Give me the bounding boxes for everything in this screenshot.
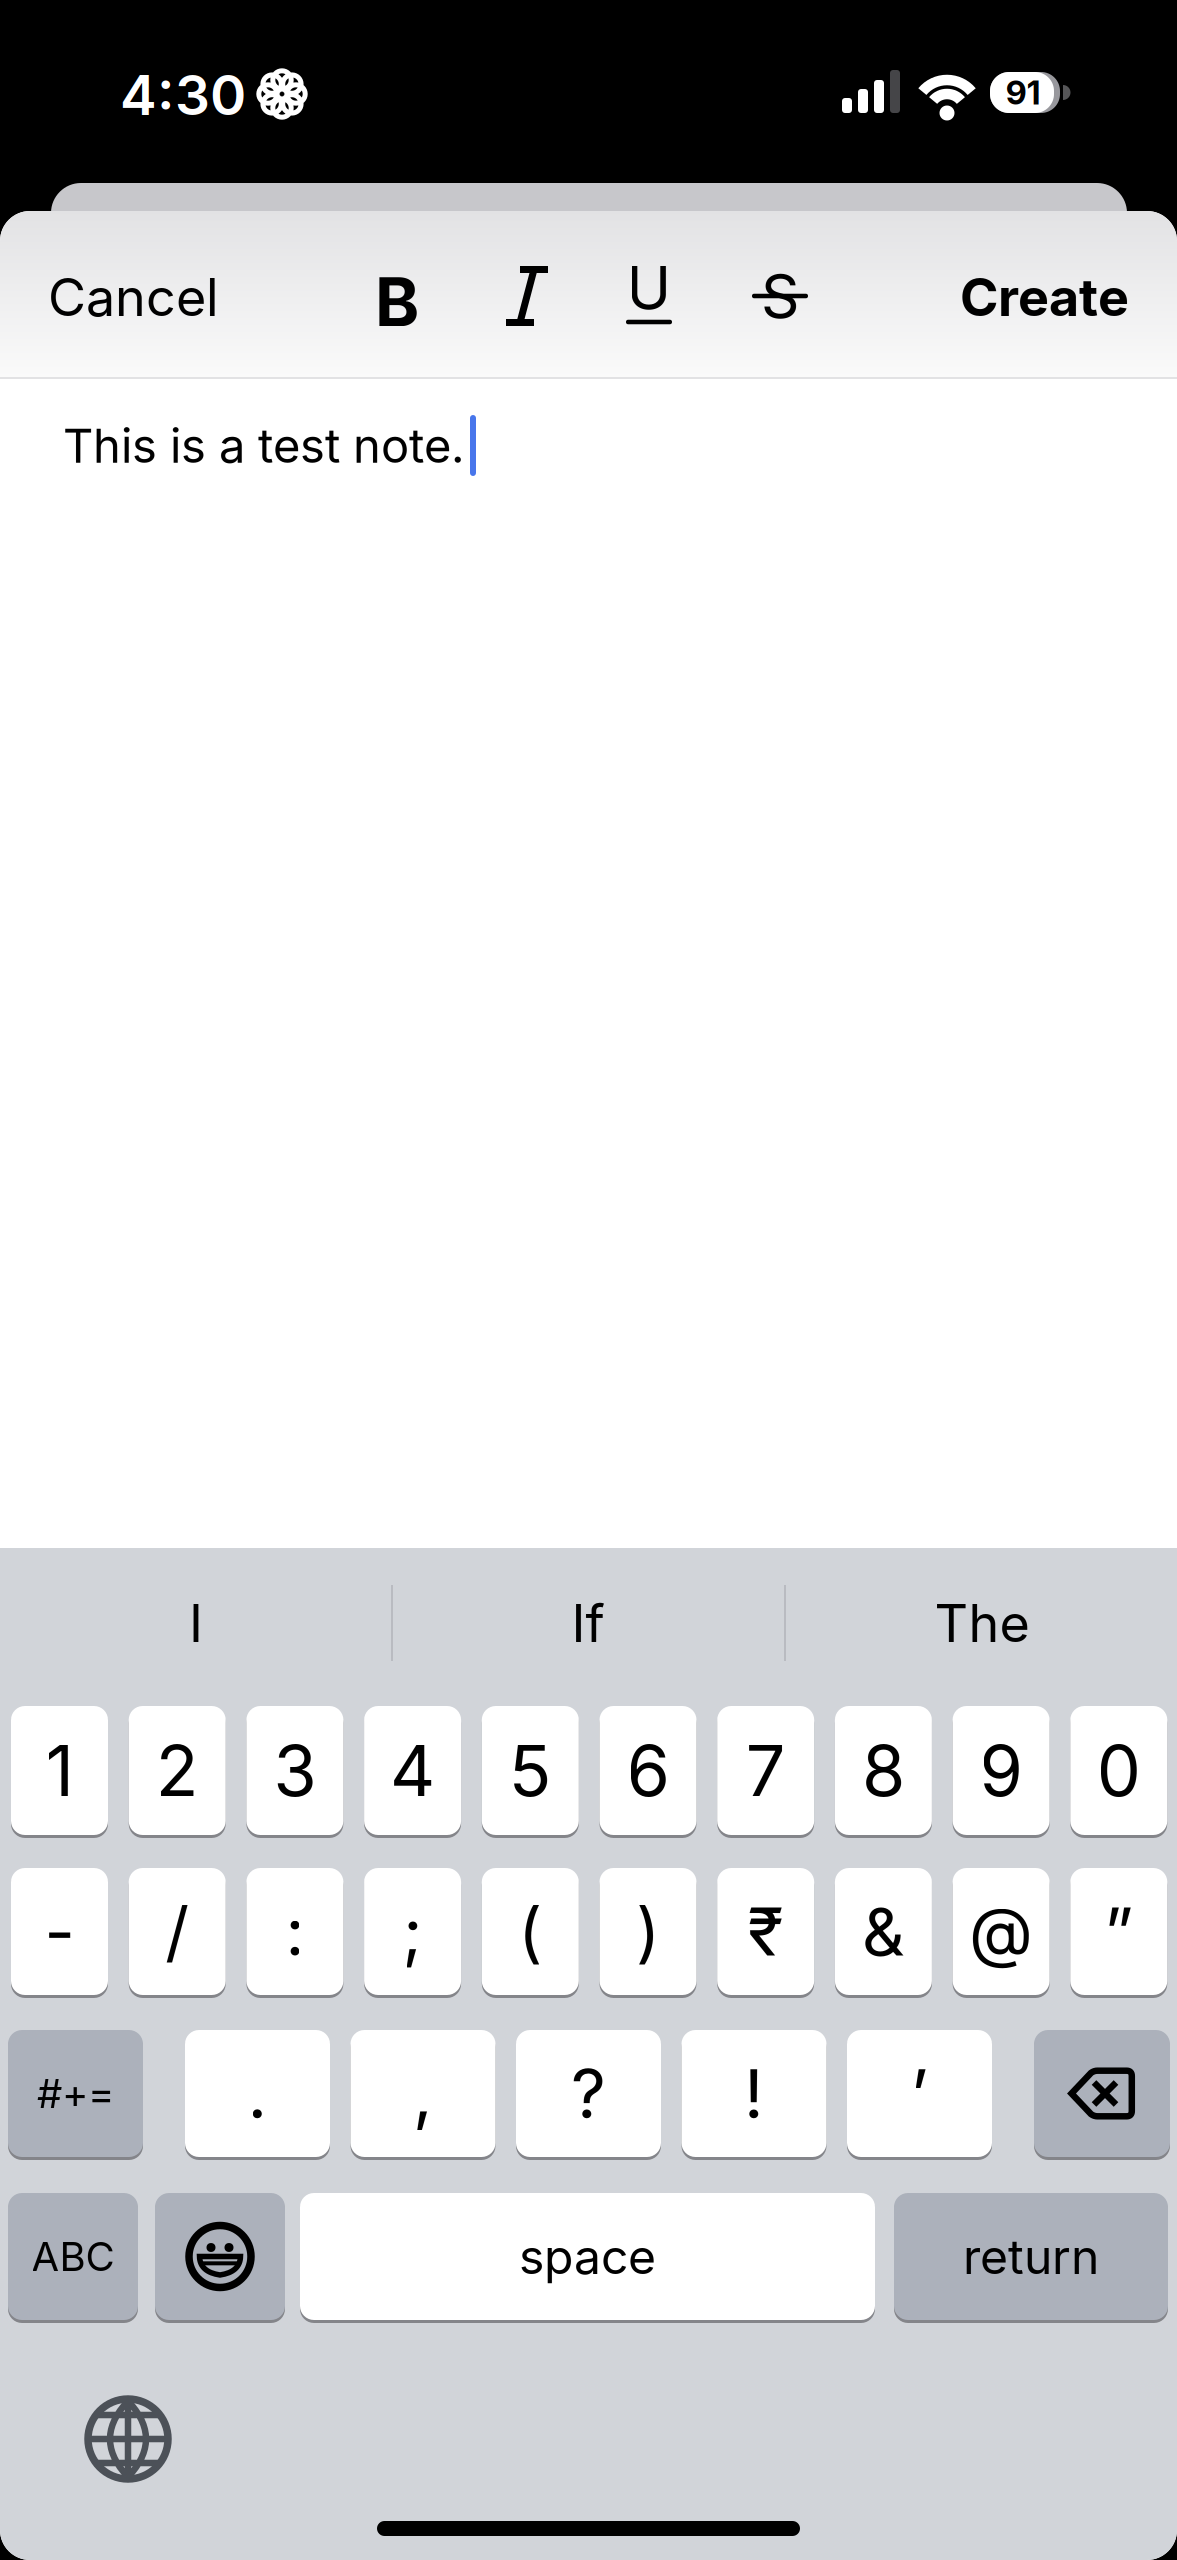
button[interactable]: 8	[835, 1706, 932, 1838]
staticText: 5	[509, 1729, 552, 1812]
staticText: .	[247, 2053, 267, 2134]
staticText: return	[963, 2228, 1099, 2285]
staticText: ’	[910, 2053, 928, 2134]
staticText: 8	[862, 1729, 905, 1812]
staticText: 3	[273, 1729, 316, 1812]
button[interactable]: ?	[516, 2030, 661, 2160]
button[interactable]: Emoji	[155, 2193, 285, 2323]
staticText: :	[285, 1893, 304, 1970]
button[interactable]: ’	[847, 2030, 992, 2160]
button[interactable]: ₹	[717, 1868, 814, 1998]
button[interactable]: !	[681, 2030, 826, 2160]
button[interactable]: 6	[599, 1706, 696, 1838]
button[interactable]: Create	[829, 211, 1129, 377]
button[interactable]: Cancel	[48, 211, 219, 377]
button[interactable]: 5	[482, 1706, 579, 1838]
button[interactable]: -	[11, 1868, 108, 1998]
staticText: 1	[45, 1729, 73, 1812]
button[interactable]: The	[787, 1548, 1177, 1698]
staticText: ,	[413, 2053, 433, 2134]
button[interactable]: 9	[953, 1706, 1050, 1838]
staticText: 4	[390, 1729, 435, 1812]
button[interactable]: Bold	[357, 211, 437, 377]
staticText: #+=	[37, 2070, 114, 2117]
button[interactable]: &	[835, 1868, 932, 1998]
staticText: 4:30	[120, 63, 246, 127]
staticText: 0	[1097, 1729, 1141, 1812]
staticText: The	[934, 1592, 1029, 1654]
staticText: )	[636, 1893, 660, 1970]
staticText: ;	[403, 1893, 423, 1970]
staticText: I	[189, 1592, 203, 1654]
staticText: &	[862, 1893, 905, 1970]
staticText: 7	[746, 1729, 786, 1812]
button[interactable]: 4	[364, 1706, 461, 1838]
button[interactable]: ”	[1070, 1868, 1167, 1998]
staticText: (	[518, 1893, 542, 1970]
button[interactable]: Italic	[487, 211, 567, 377]
staticText: 6	[626, 1729, 669, 1812]
button[interactable]: ABC	[8, 2193, 138, 2323]
staticText: ₹	[748, 1893, 784, 1970]
button[interactable]: /	[129, 1868, 226, 1998]
staticText: S	[761, 261, 799, 331]
staticText: ”	[1104, 1893, 1133, 1970]
button[interactable]: Delete	[1034, 2030, 1170, 2160]
staticText: U	[626, 253, 671, 323]
staticText: 9	[980, 1729, 1023, 1812]
staticText: Cancel	[48, 266, 219, 328]
button[interactable]: @	[953, 1868, 1050, 1998]
button[interactable]: space	[300, 2193, 875, 2323]
button[interactable]: Underline	[609, 211, 689, 377]
button[interactable]: return	[894, 2193, 1168, 2323]
staticText: @	[969, 1893, 1033, 1970]
button[interactable]: Next keyboard	[88, 2399, 168, 2479]
button[interactable]: 1	[11, 1706, 108, 1838]
button[interactable]: I	[1, 1548, 391, 1698]
button[interactable]: 7	[717, 1706, 814, 1838]
staticText: ?	[571, 2053, 606, 2134]
button[interactable]: If	[393, 1548, 783, 1698]
button[interactable]: .	[185, 2030, 330, 2160]
staticText: If	[571, 1592, 604, 1654]
button[interactable]: (	[482, 1868, 579, 1998]
staticText: -	[44, 1893, 74, 1970]
staticText: B	[375, 262, 419, 341]
button[interactable]: 2	[129, 1706, 226, 1838]
button[interactable]: Strikethrough	[740, 211, 820, 377]
button[interactable]: :	[246, 1868, 343, 1998]
staticText: /	[165, 1893, 189, 1970]
staticText: ABC	[31, 2233, 114, 2280]
staticText: Create	[960, 266, 1129, 328]
button[interactable]: #+=	[8, 2030, 143, 2160]
button[interactable]: ;	[364, 1868, 461, 1998]
button[interactable]: ,	[350, 2030, 495, 2160]
staticText: !	[744, 2053, 764, 2134]
staticText: 91	[1005, 73, 1040, 112]
staticText: This is a test note.	[63, 418, 465, 473]
button[interactable]: 0	[1070, 1706, 1167, 1838]
staticText: 2	[156, 1729, 199, 1812]
staticText: space	[519, 2228, 656, 2285]
button[interactable]: 3	[246, 1706, 343, 1838]
button[interactable]: )	[599, 1868, 696, 1998]
